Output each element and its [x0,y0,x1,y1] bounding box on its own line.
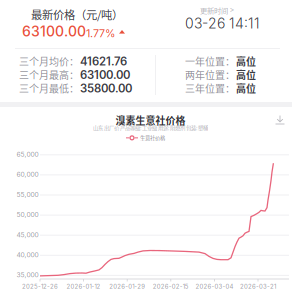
staticText: 41621.76 [80,55,127,68]
staticText: 高位 [236,54,256,68]
staticText: 2026-02-15 [153,283,189,290]
staticText: 2026-01-29 [109,283,145,290]
staticText: 生意社价格 [140,134,165,142]
staticText: 1.77% [86,27,115,40]
staticText: 三个月均价： [19,54,79,68]
staticText: 三年位置： [185,81,235,95]
button[interactable]: 更新时间 [200,5,234,16]
staticText: 三个月最低： [19,81,79,95]
staticText: 63100.00 [22,23,86,40]
staticText: 35,000 [16,271,38,279]
staticText: 两年位置： [185,67,235,82]
staticText: 溴素生意社价格 [115,113,185,127]
staticText: 03-26 14:11 [185,15,260,32]
button[interactable]: Download chart [272,112,288,128]
staticText: 一年位置： [185,54,235,68]
staticText: 45,000 [16,231,38,239]
staticText: 三个月最高： [19,67,79,82]
staticText: 35800.00 [80,82,132,95]
staticText: > [229,6,234,15]
staticText: 2025-12-26 [22,283,58,290]
staticText: 40,000 [16,251,38,259]
staticText: 更新时间 [200,5,228,16]
staticText: 山东 出厂价 产品等级:工业级 用途:阻燃剂 包装:塑桶 [93,124,208,132]
staticText: 最新价格（元/吨） [31,6,123,22]
staticText: 50,000 [16,211,38,219]
staticText: 63100.00 [80,68,130,82]
staticText: 65,000 [16,150,38,158]
staticText: 60,000 [16,170,38,178]
staticText: 高位 [236,67,256,82]
staticText: 2026-01-12 [67,283,101,290]
staticText: 2026-03-21 [240,283,276,290]
staticText: 55,000 [16,190,38,199]
staticText: 高位 [236,81,256,95]
staticText: 2026-03-04 [195,283,233,290]
